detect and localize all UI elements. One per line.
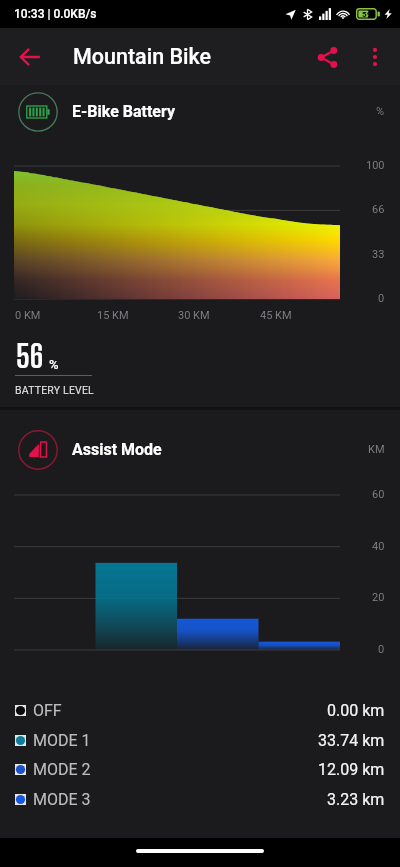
staticText: 40	[372, 540, 385, 553]
button[interactable]: Back	[8, 35, 52, 79]
staticText: 33.74 km	[318, 731, 385, 750]
staticText: %	[49, 357, 59, 372]
button[interactable]: MODE 1	[0, 725, 400, 755]
staticText: OFF	[33, 701, 62, 720]
button[interactable]: MODE 2	[0, 754, 400, 784]
staticText: MODE 1	[33, 731, 91, 750]
staticText: 100	[366, 159, 385, 172]
staticText: BATTERY LEVEL	[15, 384, 94, 396]
staticText: 60	[372, 488, 385, 501]
staticText: KM	[368, 443, 385, 456]
staticText: 0 KM	[15, 309, 41, 322]
button[interactable]: OFF	[0, 695, 400, 725]
button[interactable]: Share	[305, 35, 349, 79]
staticText: 56	[16, 337, 44, 374]
staticText: 33	[372, 248, 385, 261]
button[interactable]: Assist Mode	[0, 429, 400, 470]
staticText: E-Bike Battery	[72, 102, 176, 121]
staticText: 3.23 km	[327, 790, 385, 809]
staticText: %	[376, 105, 385, 118]
staticText: 30 KM	[178, 309, 210, 322]
button[interactable]: MODE 3	[0, 784, 400, 814]
staticText: Assist Mode	[72, 440, 162, 459]
button[interactable]: E-Bike Battery	[0, 91, 400, 132]
staticText: 20	[372, 591, 385, 604]
staticText: Mountain Bike	[73, 44, 212, 69]
staticText: 45 KM	[260, 309, 292, 322]
staticText: 59	[362, 10, 372, 19]
staticText: 10:33 | 0.0KB/s	[14, 7, 97, 21]
staticText: 66	[372, 203, 385, 216]
staticText: MODE 2	[33, 760, 91, 779]
button[interactable]: More options	[353, 35, 397, 79]
staticText: 0	[378, 643, 385, 656]
staticText: 0.00 km	[327, 701, 385, 720]
staticText: 0	[378, 292, 385, 305]
staticText: MODE 3	[33, 790, 91, 809]
staticText: 12.09 km	[318, 760, 385, 779]
staticText: 15 KM	[97, 309, 129, 322]
